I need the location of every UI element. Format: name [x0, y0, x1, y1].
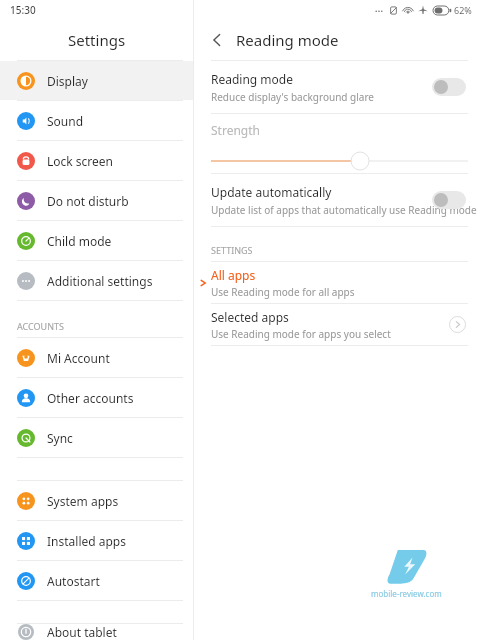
button[interactable]: Reading mode	[194, 61, 480, 113]
button[interactable]: Display	[0, 61, 193, 100]
button[interactable]: Mi Account	[0, 338, 193, 377]
staticText: Update automatically	[211, 184, 332, 200]
staticText: 62%	[454, 4, 472, 16]
button[interactable]: Selected apps	[194, 304, 480, 345]
staticText: Use Reading mode for all apps	[211, 285, 355, 299]
button[interactable]: Installed apps	[0, 521, 193, 560]
staticText: Lock screen	[47, 153, 114, 169]
button[interactable]: Autostart	[0, 561, 193, 600]
staticText: Use Reading mode for apps you select	[211, 327, 391, 341]
button[interactable]: Update automatically	[194, 174, 480, 226]
staticText: Additional settings	[47, 273, 153, 289]
button[interactable]: Child mode	[0, 221, 193, 260]
staticText: 15:30	[10, 3, 36, 17]
staticText: Display	[47, 73, 88, 89]
staticText: Sync	[47, 430, 73, 446]
button[interactable]: Toggle	[432, 78, 466, 96]
staticText: Autostart	[47, 573, 100, 589]
staticText: Strength	[211, 122, 260, 138]
button[interactable]: Other accounts	[0, 378, 193, 417]
staticText: Mi Account	[47, 350, 110, 366]
button[interactable]: Do not disturb	[0, 181, 193, 220]
staticText: Child mode	[47, 233, 112, 249]
button[interactable]: Sound	[0, 101, 193, 140]
button[interactable]: Additional settings	[0, 261, 193, 300]
staticText: Sound	[47, 113, 84, 129]
button[interactable]: All apps	[194, 262, 480, 303]
staticText: Settings	[68, 30, 126, 50]
staticText: System apps	[47, 493, 119, 509]
staticText: All apps	[211, 267, 256, 283]
staticText: Reading mode	[211, 71, 293, 87]
staticText: Reading mode	[236, 30, 339, 50]
staticText: Reduce display's background glare	[211, 90, 374, 104]
button[interactable]: Lock screen	[0, 141, 193, 180]
staticText: About tablet	[47, 624, 117, 640]
staticText: Installed apps	[47, 533, 126, 549]
button[interactable]: Strength	[194, 114, 480, 173]
button[interactable]	[194, 150, 480, 172]
staticText: Do not disturb	[47, 193, 129, 209]
button[interactable]: About tablet	[0, 624, 193, 640]
button[interactable]: Toggle	[432, 191, 466, 209]
button[interactable]: Sync	[0, 418, 193, 457]
button[interactable]: System apps	[0, 481, 193, 520]
staticText: Other accounts	[47, 390, 134, 406]
button[interactable]: Back	[206, 29, 228, 51]
staticText: Selected apps	[211, 309, 289, 325]
staticText: mobile-review.com	[371, 588, 442, 599]
staticText: Update list of apps that automatically u…	[211, 203, 477, 217]
staticText: SETTINGS	[211, 244, 253, 256]
staticText: ACCOUNTS	[17, 320, 64, 332]
